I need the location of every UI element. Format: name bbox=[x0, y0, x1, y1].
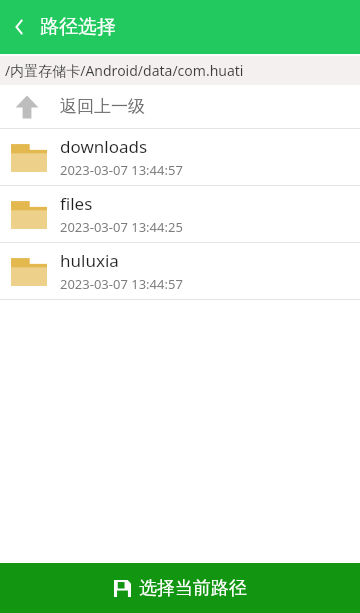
staticText: huluxia bbox=[60, 249, 119, 272]
staticText: 选择当前路径 bbox=[139, 577, 247, 600]
button[interactable]: downloads bbox=[0, 129, 360, 186]
staticText: downloads bbox=[60, 135, 148, 158]
staticText: files bbox=[60, 192, 93, 215]
staticText: 2023-03-07 13:44:25 bbox=[60, 218, 183, 236]
button[interactable]: Back bbox=[0, 0, 40, 54]
button[interactable]: files bbox=[0, 186, 360, 243]
staticText: 返回上一级 bbox=[60, 96, 145, 117]
button[interactable]: huluxia bbox=[0, 243, 360, 300]
staticText: 2023-03-07 13:44:57 bbox=[60, 161, 183, 179]
button[interactable]: /内置存储卡/Android/data/com.huati bbox=[0, 56, 360, 85]
staticText: /内置存储卡/Android/data/com.huati bbox=[5, 61, 244, 80]
staticText: 路径选择 bbox=[40, 15, 116, 39]
button[interactable]: 返回上一级 bbox=[0, 85, 360, 129]
staticText: 2023-03-07 13:44:57 bbox=[60, 275, 183, 293]
button[interactable]: 选择当前路径 bbox=[0, 563, 360, 613]
